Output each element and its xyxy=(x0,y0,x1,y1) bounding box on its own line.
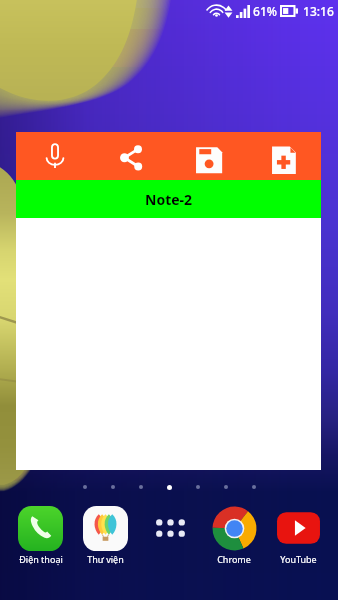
button[interactable]: Note-2 xyxy=(16,180,321,218)
button[interactable]: YouTube xyxy=(266,505,330,565)
button[interactable]: Share note xyxy=(93,132,169,180)
staticText: 61% xyxy=(250,3,278,19)
staticText: YouTube xyxy=(280,553,317,565)
button[interactable]: Save note xyxy=(169,132,245,180)
button[interactable]: Apps xyxy=(138,505,202,550)
staticText: 13:16 xyxy=(300,3,334,19)
staticText: Điện thoại xyxy=(19,553,63,565)
staticText: Chrome xyxy=(217,553,251,565)
button[interactable]: Gallery xyxy=(73,505,138,565)
button[interactable]: New note xyxy=(245,132,321,180)
button[interactable]: Chrome xyxy=(202,505,266,565)
staticText: Thư viện xyxy=(87,553,124,565)
staticText: Note-2 xyxy=(145,190,193,209)
button[interactable]: Phone xyxy=(8,505,73,565)
button[interactable]: Record voice note xyxy=(16,132,93,180)
